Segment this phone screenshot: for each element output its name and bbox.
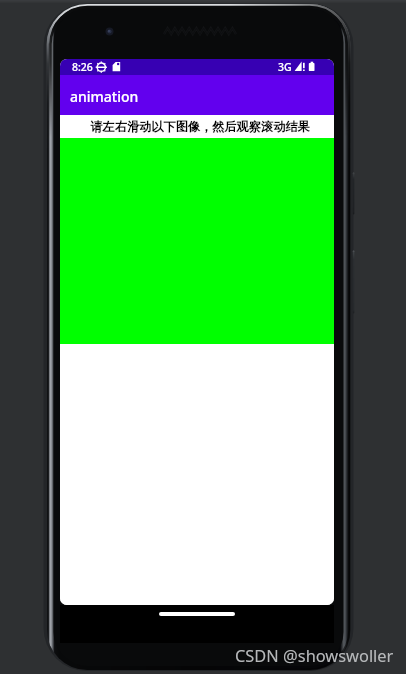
staticText: 3G bbox=[278, 60, 292, 74]
staticText: CSDN @showswoller bbox=[235, 644, 394, 666]
staticText: 请左右滑动以下图像，然后观察滚动结果 bbox=[90, 119, 310, 134]
button[interactable]: Power bbox=[352, 171, 355, 216]
button[interactable]: Volume bbox=[352, 249, 355, 315]
staticText: animation bbox=[70, 87, 139, 106]
button[interactable]: animation bbox=[60, 75, 334, 115]
button[interactable]: Home gesture bar bbox=[60, 605, 334, 643]
staticText: 8:26 bbox=[72, 60, 93, 74]
